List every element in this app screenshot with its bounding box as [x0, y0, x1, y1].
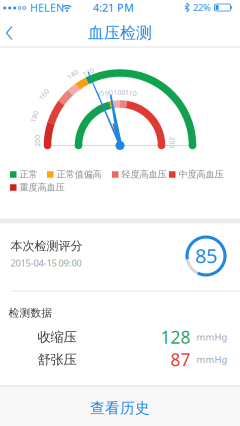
staticText: 200	[31, 136, 43, 145]
staticText: mmHg	[196, 353, 227, 366]
staticText: 100	[113, 88, 125, 97]
button[interactable]: Back	[0, 22, 22, 44]
staticText: 85	[96, 89, 104, 98]
staticText: 180	[28, 112, 40, 121]
staticText: 87	[170, 348, 190, 371]
staticText: 轻度高血压	[121, 169, 166, 180]
staticText: 110	[125, 88, 137, 97]
staticText: HELEN	[30, 0, 64, 15]
staticText: 2015-04-15 09:00	[10, 257, 81, 269]
staticText: 200	[166, 138, 178, 147]
staticText: 128	[160, 325, 190, 348]
staticText: 查看历史	[90, 399, 150, 417]
staticText: 检测数据	[8, 306, 52, 319]
staticText: 160	[38, 90, 50, 99]
staticText: 收缩压	[37, 329, 76, 345]
staticText: mmHg	[196, 331, 227, 343]
staticText: 正常值偏高	[56, 169, 101, 180]
staticText: 舒张压	[37, 351, 76, 368]
staticText: 130	[82, 68, 94, 77]
staticText: 血压检测	[88, 23, 152, 43]
staticText: 本次检测评分	[10, 239, 82, 253]
staticText: 正常	[19, 169, 37, 180]
staticText: 140	[67, 70, 79, 79]
staticText: 中度高血压	[178, 169, 223, 180]
staticText: 85	[195, 242, 217, 269]
staticText: 90	[105, 88, 113, 97]
staticText: 4:21 PM	[93, 0, 134, 15]
button[interactable]: 查看历史	[0, 385, 240, 426]
staticText: 重度高血压	[19, 182, 64, 193]
staticText: 22%	[193, 1, 211, 14]
